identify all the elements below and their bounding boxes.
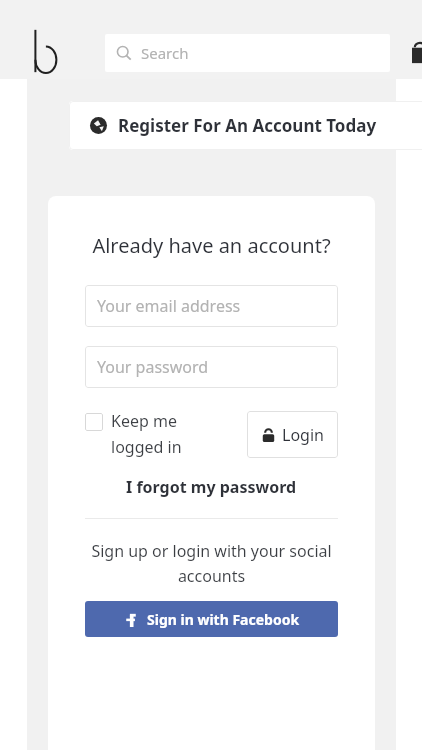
button[interactable]: Cart — [410, 42, 422, 64]
button[interactable]: Your email address — [85, 285, 338, 327]
staticText: Search — [141, 43, 189, 63]
staticText: Already have an account? — [85, 232, 338, 259]
staticText: I forgot my password — [126, 476, 297, 498]
button[interactable]: Register For An Account Today — [69, 101, 422, 150]
staticText: Sign in with Facebook — [147, 610, 300, 629]
staticText: Sign up or login with your social accoun… — [85, 540, 338, 586]
button[interactable]: I forgot my password — [85, 476, 338, 498]
staticText: Register For An Account Today — [118, 114, 377, 137]
button[interactable]: Sign in with Facebook — [85, 601, 338, 637]
button[interactable]: Keep me logged in — [85, 410, 205, 458]
staticText: Keep me logged in — [111, 410, 205, 458]
staticText: Your email address — [97, 295, 241, 317]
button[interactable]: Login — [247, 411, 338, 458]
staticText: Login — [282, 424, 324, 446]
button[interactable]: Your password — [85, 346, 338, 388]
staticText: Your password — [97, 356, 209, 378]
button[interactable]: Search — [105, 34, 390, 72]
button[interactable]: Home — [30, 28, 60, 74]
